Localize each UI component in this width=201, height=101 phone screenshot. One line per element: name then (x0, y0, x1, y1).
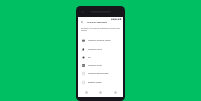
button[interactable]: Adicionar Mercado Pago (78, 69, 123, 77)
button[interactable]: Resgatar código (78, 78, 123, 86)
staticText: Adicionar PayPal (88, 48, 102, 50)
staticText: Adicionar PicPay (88, 64, 102, 66)
button[interactable]: Home (80, 87, 93, 97)
button[interactable]: Adicionar cartão de crédito (78, 36, 123, 44)
staticText: Gerencie as formas de pagamento da sua c… (81, 27, 122, 32)
button[interactable]: Adicionar PicPay (78, 61, 123, 69)
button[interactable]: Adicionar PayPal (78, 45, 123, 53)
button[interactable]: Back (79, 19, 84, 24)
staticText: Adicionar cartão de crédito (88, 39, 111, 41)
staticText: Adicionar Mercado Pago (88, 72, 109, 74)
staticText: Pix (88, 56, 91, 58)
staticText: Resgatar código (88, 81, 102, 83)
button[interactable]: Account (109, 87, 122, 97)
button[interactable]: Payments (94, 87, 107, 97)
button[interactable]: Pix (78, 53, 123, 61)
staticText: Formas de pagamento (87, 21, 108, 23)
